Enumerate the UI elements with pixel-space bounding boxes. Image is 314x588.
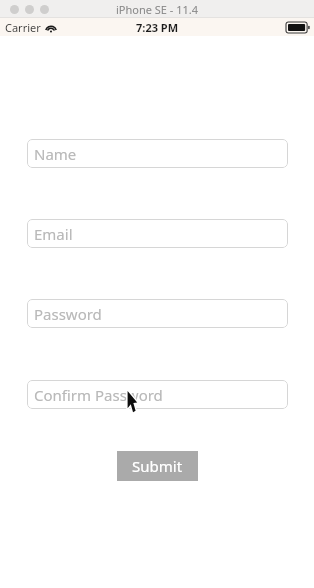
button[interactable] (40, 5, 49, 14)
staticText: Email (34, 224, 73, 244)
other: Wi-Fi signal (45, 23, 57, 33)
staticText: Password (34, 304, 102, 324)
staticText: Confirm Password (34, 385, 163, 405)
staticText: iPhone SE - 11.4 (116, 2, 199, 17)
staticText: 7:23 PM (136, 20, 179, 35)
button[interactable]: Name (27, 139, 288, 168)
button[interactable]: Submit (117, 451, 198, 481)
button[interactable]: Confirm Password (27, 380, 288, 409)
button[interactable]: Email (27, 219, 288, 248)
button[interactable] (10, 5, 19, 14)
other: Battery (286, 22, 310, 33)
staticText: Carrier (5, 20, 41, 35)
staticText: Submit (132, 456, 183, 476)
button[interactable] (25, 5, 34, 14)
staticText: Name (34, 144, 77, 164)
button[interactable]: Password (27, 299, 288, 328)
